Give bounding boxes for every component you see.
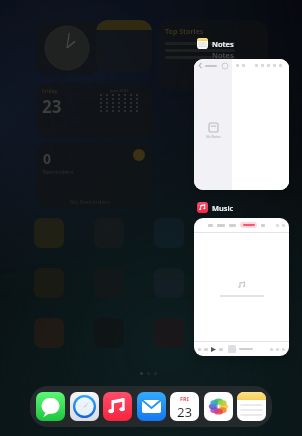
button[interactable]: No Notes [194,59,289,190]
button[interactable]: Music [103,392,132,421]
staticText: Notes [212,39,234,49]
button[interactable]: Music [197,202,234,213]
staticText: Friday [42,88,58,95]
staticText: 0 [43,149,52,168]
button[interactable]: Calendar [170,392,199,421]
staticText: Notes [212,50,234,60]
button[interactable]: Messages [36,392,65,421]
button[interactable]: Notes [197,38,234,49]
staticText: FRI [180,395,189,403]
button[interactable]: Notes [237,392,266,421]
staticText: Top Stories [165,27,204,37]
staticText: Reminders [43,168,74,176]
staticText: 23 [177,403,193,421]
button[interactable]: Mail [137,392,166,421]
staticText: 23 [42,95,62,118]
button[interactable]: Photos [204,392,233,421]
button[interactable] [194,218,289,356]
staticText: Music [212,203,234,213]
staticText: June 2023 [110,88,129,93]
staticText: No Reminders [70,198,111,206]
staticText: No Notes [206,134,221,139]
button[interactable]: Safari [70,392,99,421]
